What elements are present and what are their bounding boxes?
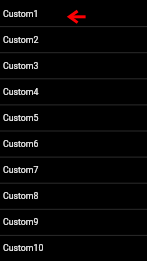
staticText: Custom8 xyxy=(3,191,39,201)
staticText: Custom1 xyxy=(3,9,39,19)
button[interactable]: Custom3 xyxy=(0,52,147,78)
button[interactable]: Custom8 xyxy=(0,182,147,208)
staticText: Custom9 xyxy=(3,217,39,227)
button[interactable]: Custom4 xyxy=(0,78,147,104)
staticText: Custom2 xyxy=(3,35,39,45)
button[interactable]: Custom7 xyxy=(0,156,147,182)
button[interactable]: Custom9 xyxy=(0,208,147,234)
other: Back xyxy=(0,0,147,261)
staticText: Custom4 xyxy=(3,87,39,97)
button[interactable]: Custom6 xyxy=(0,130,147,156)
staticText: Custom5 xyxy=(3,113,39,123)
button[interactable]: Custom1 xyxy=(0,0,147,26)
staticText: Custom7 xyxy=(3,165,39,175)
button[interactable]: Custom10 xyxy=(0,234,147,260)
staticText: Custom10 xyxy=(3,243,44,253)
staticText: Custom6 xyxy=(3,139,39,149)
button[interactable]: Custom5 xyxy=(0,104,147,130)
button[interactable]: Custom2 xyxy=(0,26,147,52)
staticText: Custom3 xyxy=(3,61,39,71)
